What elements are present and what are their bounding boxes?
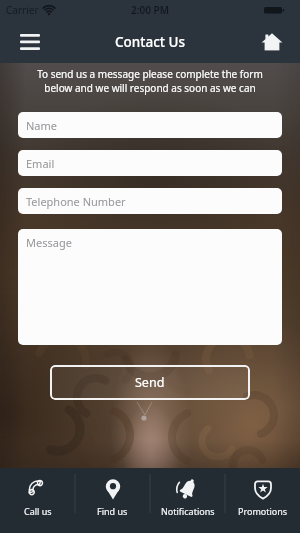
staticText: Promotions <box>238 505 288 517</box>
staticText: Name <box>26 118 58 133</box>
button[interactable]: Name <box>18 112 282 138</box>
button[interactable]: Call us <box>0 468 75 533</box>
button[interactable]: Email <box>18 150 282 176</box>
staticText: Send <box>135 374 165 391</box>
button[interactable]: Promotions <box>225 468 300 533</box>
staticText: Notifications <box>161 505 215 517</box>
staticText: Email <box>26 156 55 171</box>
staticText: Carrier <box>6 3 39 17</box>
button[interactable]: Telephone Number <box>18 188 282 214</box>
button[interactable]: Send <box>50 365 250 400</box>
staticText: 2:00 PM <box>131 3 169 17</box>
staticText: Telephone Number <box>26 194 126 209</box>
staticText: Call us <box>24 505 52 517</box>
staticText: Find us <box>97 505 128 517</box>
staticText: To send us a message please complete the… <box>0 67 300 95</box>
button[interactable]: Find us <box>75 468 150 533</box>
button[interactable]: Notifications <box>150 468 225 533</box>
button[interactable] <box>254 24 290 60</box>
button[interactable] <box>12 24 48 60</box>
button[interactable]: Message <box>18 229 282 345</box>
staticText: Message <box>26 235 72 250</box>
staticText: Contact Us <box>115 33 186 51</box>
